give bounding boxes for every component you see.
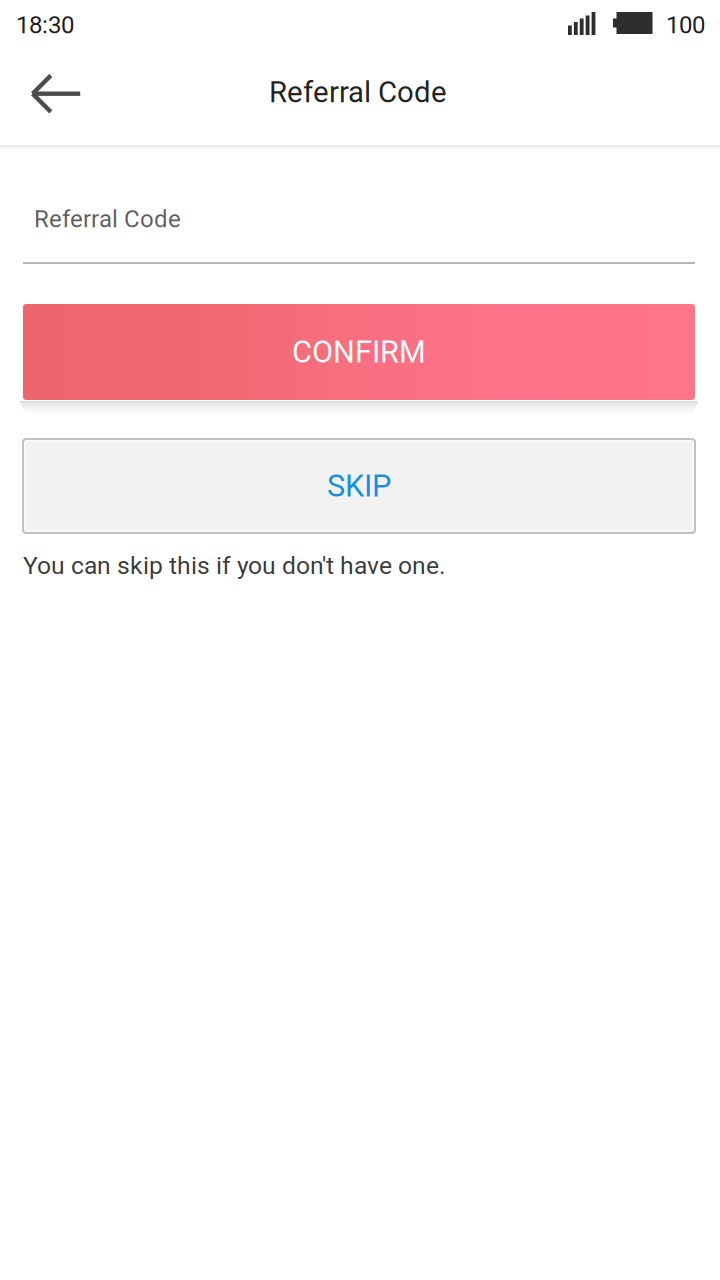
button[interactable]: Back [32,74,82,114]
button[interactable]: CONFIRM [23,304,695,400]
staticText: CONFIRM [292,334,426,370]
staticText: 18:30 [16,11,74,39]
button[interactable]: SKIP [23,439,695,533]
staticText: Referral Code [269,75,447,109]
staticText: You can skip this if you don't have one. [23,551,446,580]
staticText: Referral Code [34,205,181,233]
staticText: SKIP [327,468,391,504]
staticText: 100 [666,11,705,39]
